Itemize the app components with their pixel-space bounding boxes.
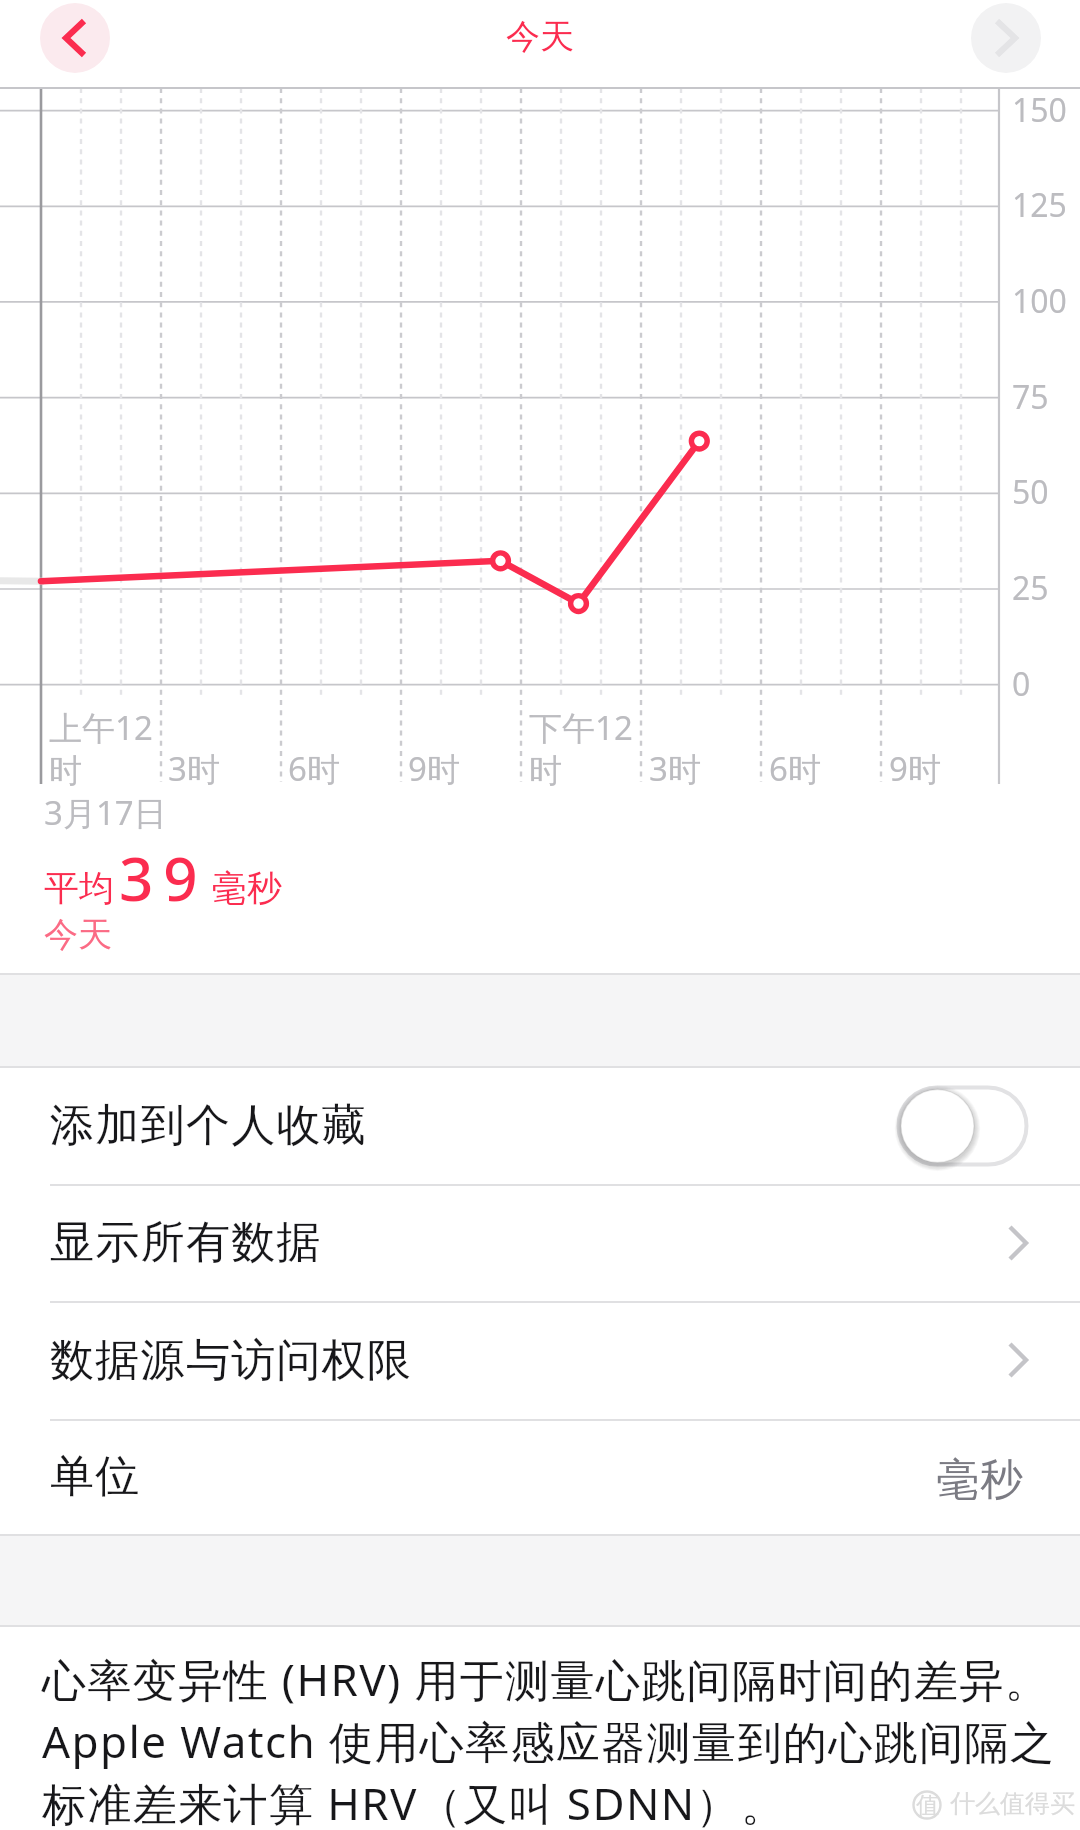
staticText: 3时	[168, 746, 220, 791]
other: Open	[1008, 1225, 1028, 1261]
staticText: 0	[1012, 662, 1031, 706]
staticText: 数据源与访问权限	[50, 1333, 413, 1388]
staticText: 上午12 时	[49, 705, 153, 792]
button[interactable]: 显示所有数据	[0, 1184, 1080, 1301]
button[interactable]: Back	[40, 3, 110, 73]
staticText: 125	[1012, 183, 1067, 227]
staticText: 显示所有数据	[50, 1215, 322, 1270]
staticText: 39	[119, 837, 208, 919]
staticText: 添加到个人收藏	[50, 1098, 368, 1153]
staticText: 值	[916, 1791, 939, 1820]
staticText: 什么值得买	[950, 1788, 1075, 1819]
staticText: 25	[1012, 566, 1049, 610]
staticText: 今天	[44, 913, 112, 956]
staticText: 150	[1012, 88, 1067, 132]
button[interactable]: 数据源与访问权限	[0, 1301, 1080, 1419]
button[interactable]: 添加到个人收藏	[0, 1067, 1080, 1184]
staticText: 100	[1012, 279, 1067, 323]
staticText: 单位	[50, 1449, 141, 1504]
staticText: 心率变异性 (HRV) 用于测量心跳间隔时间的差异。 Apple Watch 使…	[42, 1649, 1056, 1830]
staticText: 50	[1012, 470, 1049, 514]
staticText: 下午12 时	[529, 705, 633, 792]
staticText: 75	[1012, 375, 1049, 419]
staticText: 平均	[44, 866, 114, 910]
staticText: 3月17日	[44, 790, 167, 835]
button[interactable]: Add to favourites toggle	[897, 1086, 1028, 1166]
staticText: 6时	[288, 746, 340, 791]
staticText: 今天	[506, 15, 574, 58]
staticText: 6时	[769, 746, 821, 791]
staticText: 3时	[649, 746, 701, 791]
button[interactable]: Forward	[971, 3, 1041, 73]
other: Open	[1008, 1342, 1028, 1378]
button[interactable]: 单位	[0, 1419, 1080, 1534]
staticText: 毫秒	[936, 1453, 1025, 1507]
staticText: 毫秒	[212, 866, 282, 910]
staticText: 9时	[408, 746, 460, 791]
staticText: 9时	[889, 746, 941, 791]
